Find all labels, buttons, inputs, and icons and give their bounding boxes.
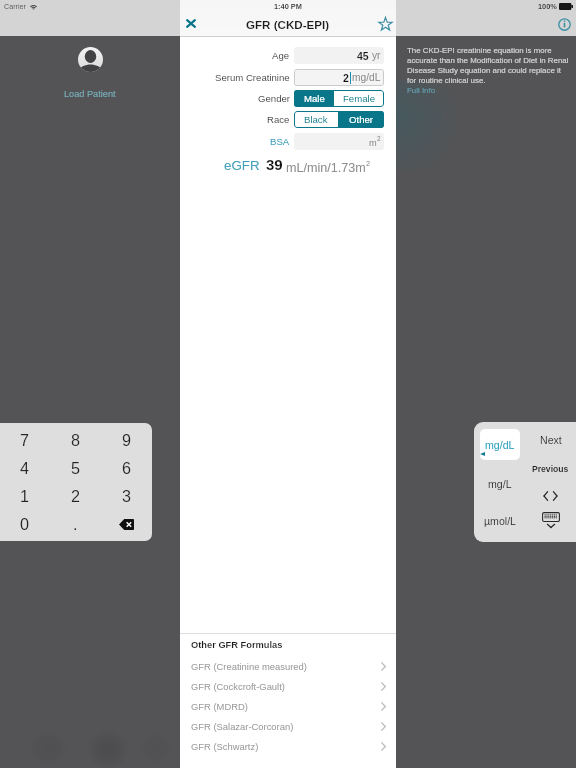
staticText: 2 [366,159,371,167]
staticText: Previous [532,464,569,474]
button[interactable]: 1 [0,482,50,510]
button[interactable]: 6 [101,454,152,482]
button[interactable]: 0 [0,510,50,538]
button[interactable]: µmol/L [477,510,523,531]
button[interactable]: . [50,510,101,538]
button[interactable]: Next [530,430,571,450]
staticText: Other [349,114,373,125]
staticText: 3 [122,487,132,505]
button[interactable]: 9 [101,425,152,454]
staticText: The CKD-EPI creatinine equation is more [407,46,552,55]
staticText: Load Patient [64,89,116,99]
staticText: accurate than the Modification of Diet i… [407,56,569,65]
button[interactable]: GFR (MDRD) [180,696,396,716]
button[interactable]: Full Info [407,86,436,96]
staticText: GFR (Schwartz) [191,741,259,752]
staticText: Gender [258,93,290,104]
button[interactable]: 3 [101,482,152,510]
button[interactable]: Load patient [78,47,103,72]
staticText: 4 [20,459,30,477]
button[interactable]: mg/L [480,473,520,494]
button[interactable] [294,133,384,150]
staticText: 5 [71,459,81,477]
staticText: Race [267,114,290,125]
button[interactable]: Other [338,111,384,128]
staticText: 2 [377,135,381,142]
staticText: 1 [20,487,30,505]
staticText: mg/L [488,478,512,490]
staticText: BSA [270,136,290,147]
button[interactable]: 8 [50,425,101,454]
staticText: 9 [122,431,132,449]
button[interactable]: Info [552,12,576,36]
staticText: Other GFR Formulas [191,640,283,650]
staticText: Next [540,434,562,446]
other: Delete [119,519,134,530]
button[interactable]: mg/dL [480,429,520,460]
staticText: mL/min/1.73m [286,161,366,175]
button[interactable]: GFR (Cockcroft-Gault) [180,676,396,696]
staticText: Female [343,93,375,104]
staticText: 2 [71,487,81,505]
staticText: Black [304,114,328,125]
staticText: GFR (Cockcroft-Gault) [191,681,285,692]
staticText: Carrier [4,2,26,10]
staticText: for routine clinical use. [407,76,486,85]
button[interactable]: Black [294,111,338,128]
button[interactable] [294,69,384,86]
staticText: 7 [20,431,30,449]
staticText: Male [304,93,325,104]
staticText: . [73,515,78,533]
button[interactable]: Previous or next field [535,487,565,505]
staticText: GFR (MDRD) [191,701,248,712]
staticText: mg/dL [352,72,381,83]
staticText: Age [272,50,290,61]
staticText: Serum Creatinine [215,72,290,83]
button[interactable]: Male [294,90,334,107]
staticText: 2 [343,72,349,84]
staticText: µmol/L [484,515,517,527]
staticText: mg/dL [485,439,515,451]
button[interactable]: 4 [0,454,50,482]
button[interactable]: Hide keyboard [538,512,563,533]
button[interactable]: 5 [50,454,101,482]
staticText: 0 [20,515,30,533]
button[interactable]: Female [334,90,384,107]
staticText: Full Info [407,86,436,95]
staticText: GFR (Creatinine measured) [191,661,307,672]
button[interactable]: GFR (Creatinine measured) [180,656,396,676]
staticText: 6 [122,459,132,477]
button[interactable]: GFR (Salazar-Corcoran) [180,716,396,736]
staticText: 8 [71,431,81,449]
staticText: GFR (Salazar-Corcoran) [191,721,294,732]
staticText: 45 [357,50,369,62]
staticText: GFR (CKD-EPI) [246,18,330,31]
button[interactable]: Close [180,12,202,35]
button[interactable]: Previous [530,460,571,477]
button[interactable]: 2 [50,482,101,510]
button[interactable]: GFR (Schwartz) [180,736,396,756]
button[interactable]: Delete [101,510,152,538]
staticText: Disease Study equation and could replace… [407,66,561,75]
button[interactable]: 7 [0,425,50,454]
button[interactable]: Favorite [374,12,396,35]
staticText: 1:40 PM [274,2,302,10]
button[interactable] [294,47,384,64]
staticText: 100% [538,2,557,10]
staticText: eGFR [224,158,260,173]
staticText: yr [372,50,381,61]
staticText: 39 [266,156,283,173]
staticText: m [369,138,377,148]
